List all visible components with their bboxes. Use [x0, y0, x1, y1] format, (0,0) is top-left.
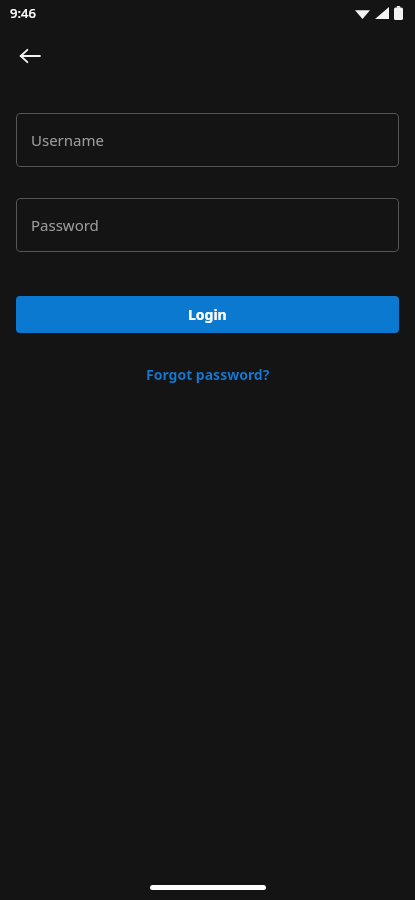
- button[interactable]: Login: [16, 296, 399, 333]
- button[interactable]: Password: [16, 198, 399, 252]
- staticText: Username: [31, 130, 104, 150]
- button[interactable]: Username: [16, 113, 399, 167]
- staticText: Login: [188, 305, 227, 324]
- staticText: Password: [31, 215, 99, 235]
- staticText: 9:46: [10, 4, 36, 22]
- button[interactable]: Forgot password?: [16, 365, 399, 384]
- button[interactable]: Back: [10, 36, 50, 76]
- staticText: Forgot password?: [146, 365, 270, 384]
